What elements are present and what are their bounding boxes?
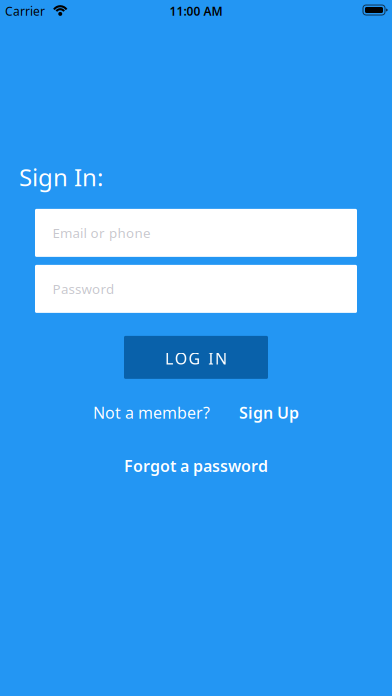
button[interactable]: Email or phone bbox=[35, 209, 357, 257]
button[interactable]: Sign Up bbox=[239, 402, 299, 423]
staticText: Sign In: bbox=[19, 161, 103, 193]
staticText: LOG IN bbox=[165, 348, 227, 369]
button[interactable]: Forgot a password bbox=[124, 455, 268, 476]
button[interactable]: Password bbox=[35, 265, 357, 313]
staticText: Carrier bbox=[5, 3, 45, 19]
staticText: 11:00 AM bbox=[169, 3, 222, 19]
staticText: Password bbox=[52, 280, 114, 298]
staticText: Forgot a password bbox=[124, 455, 268, 476]
staticText: Not a member? bbox=[93, 402, 210, 423]
button[interactable]: LOG IN bbox=[124, 336, 268, 379]
staticText: Email or phone bbox=[52, 224, 151, 242]
staticText: Sign Up bbox=[239, 402, 299, 423]
